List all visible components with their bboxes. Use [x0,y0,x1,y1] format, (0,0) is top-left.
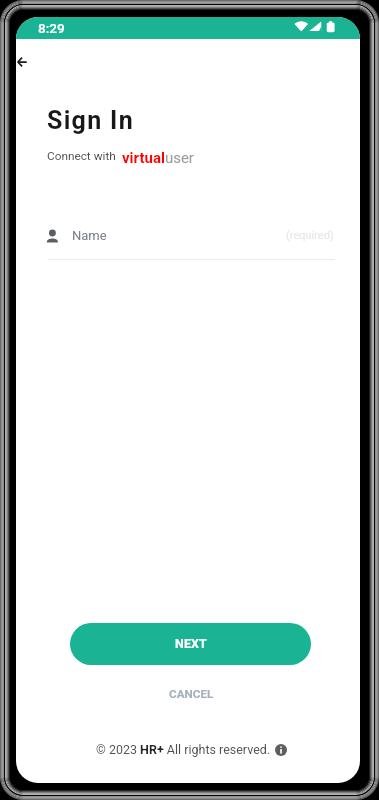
staticText: CANCEL [169,687,214,701]
button[interactable]: Back [16,44,52,80]
staticText: (required) [286,229,334,242]
staticText: Name [72,228,107,243]
staticText: 8:29 [38,20,65,36]
staticText: Sign In [47,106,134,135]
staticText: Connect with [47,149,116,163]
button[interactable]: NEXT [70,623,311,665]
staticText: © 2023 HR+ All rights reserved. [96,742,271,757]
staticText: NEXT [175,636,207,651]
staticText: virtualuser [122,149,194,167]
button[interactable]: CANCEL [149,679,234,709]
